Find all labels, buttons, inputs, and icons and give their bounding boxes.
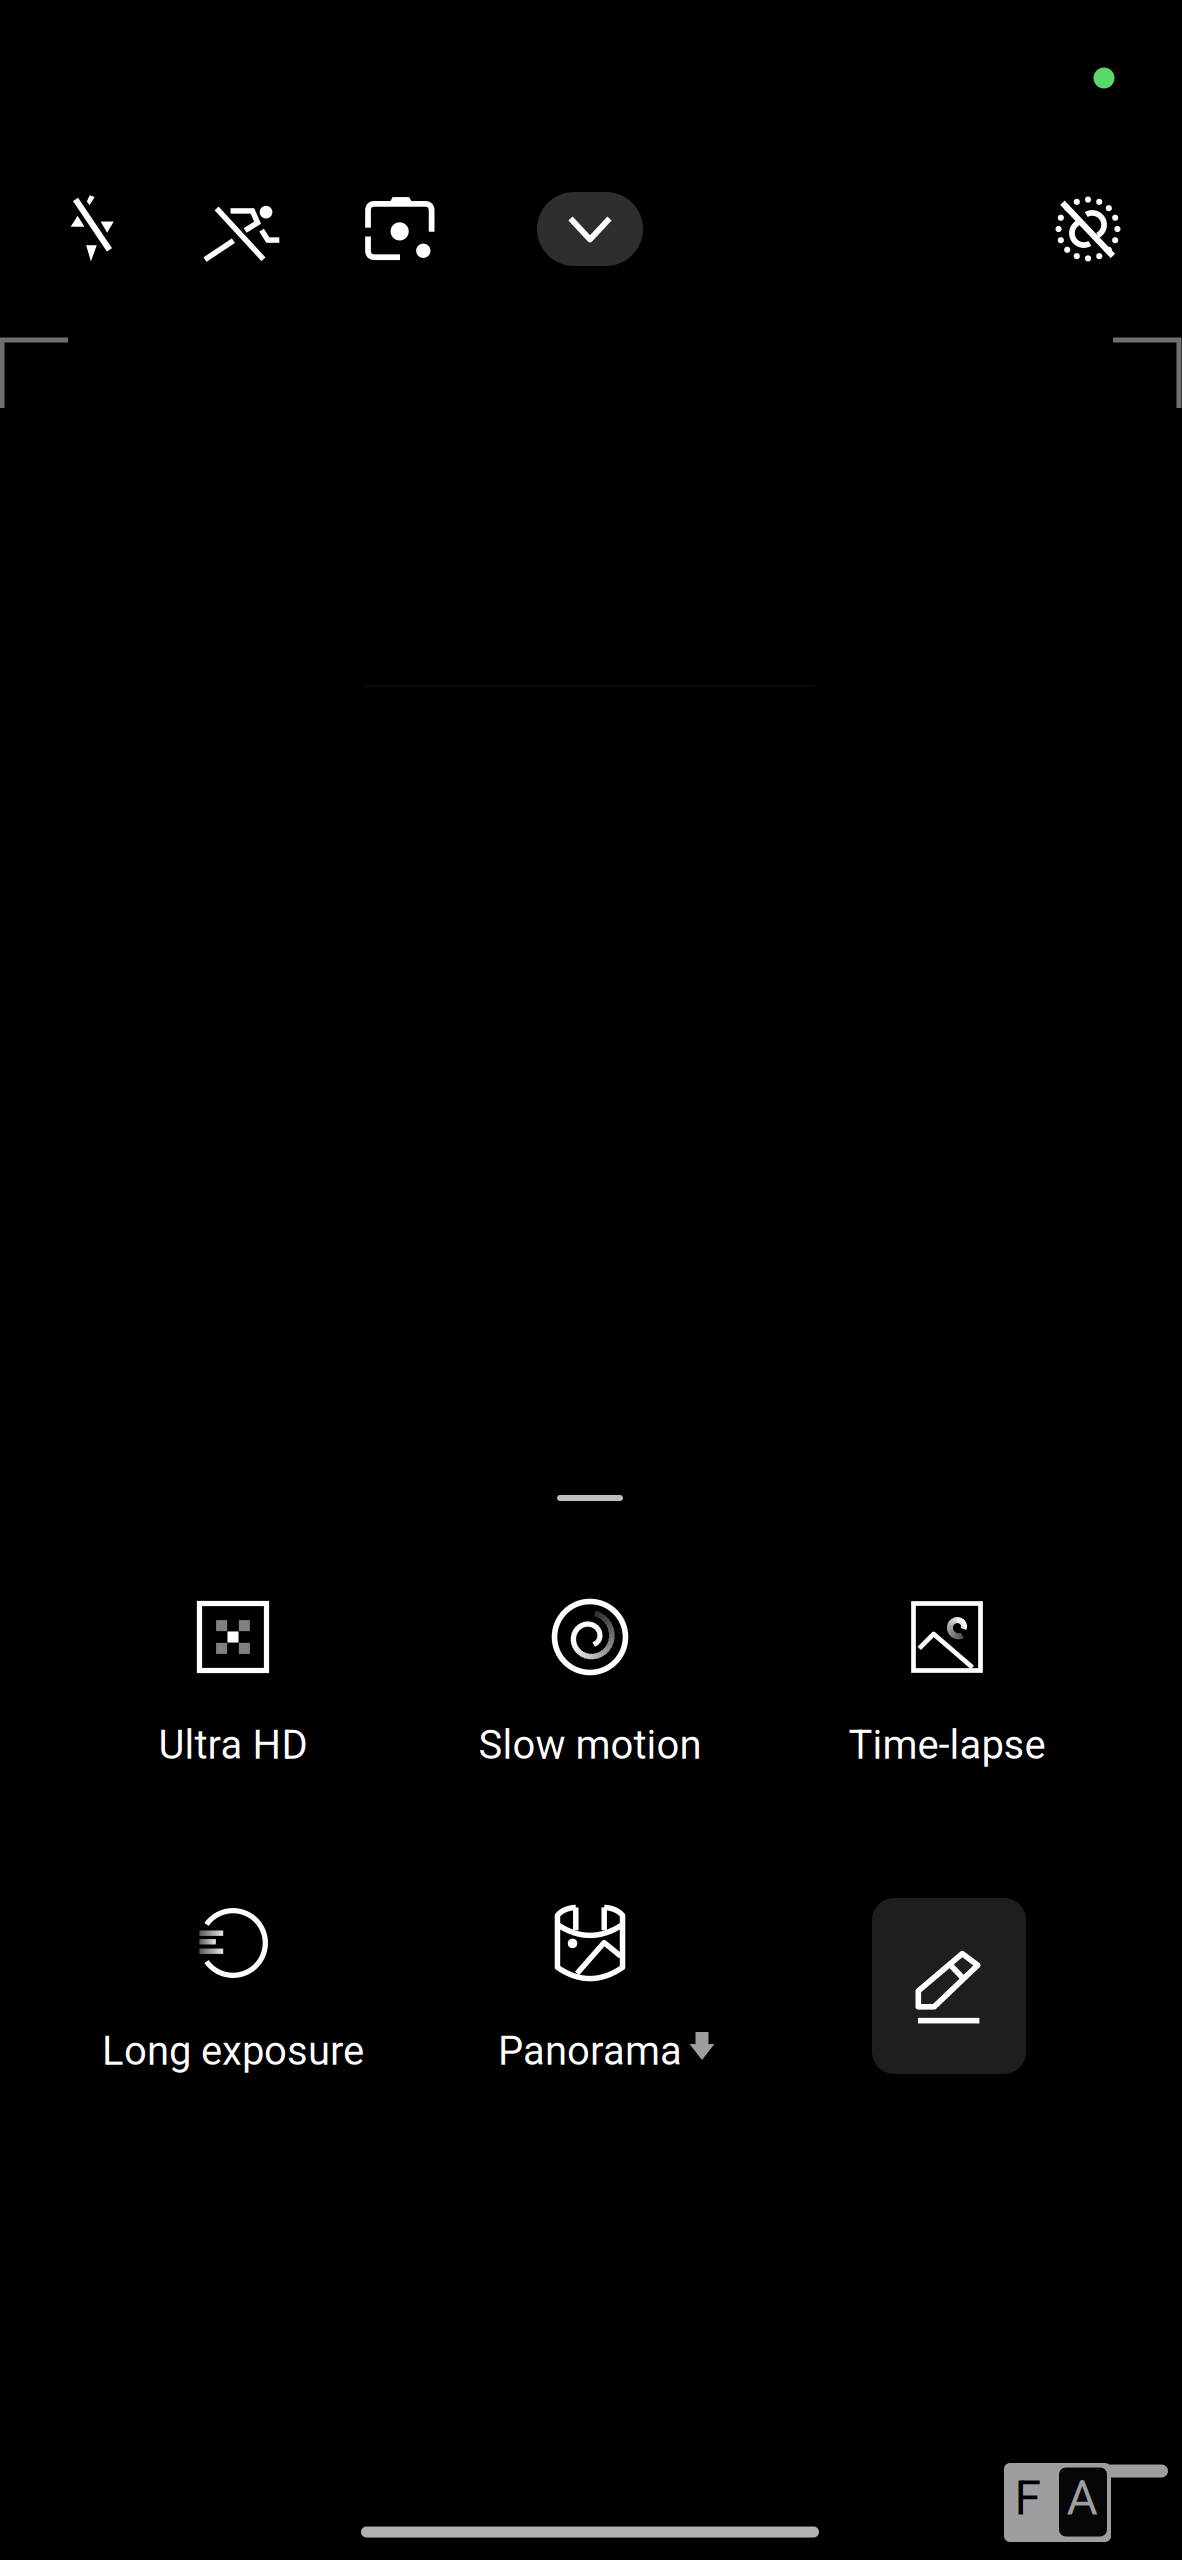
staticText: Panorama [498,2028,682,2074]
button[interactable]: More camera options [537,192,643,266]
button[interactable]: Long exposure [53,1907,413,2107]
button[interactable]: Motion photo off [184,174,300,290]
staticText: Ultra HD [158,1722,307,1768]
staticText: Long exposure [102,2028,364,2074]
button[interactable]: Edit camera modes [872,1898,1026,2074]
staticText: Slow motion [478,1722,701,1768]
button[interactable]: Panorama [410,1907,770,2107]
button[interactable]: Time-lapse [767,1601,1127,1801]
button[interactable]: Ultra HD [53,1601,413,1801]
button[interactable]: Slow motion [410,1601,770,1801]
staticText: F [1014,2470,1041,2526]
button[interactable]: Photo mode [342,171,458,287]
button[interactable]: Timer off [1030,171,1146,287]
staticText: Time-lapse [848,1722,1045,1768]
staticText: A [1066,2470,1097,2526]
button[interactable]: Flash off [35,172,151,288]
